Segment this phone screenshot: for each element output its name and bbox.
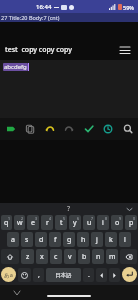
staticText: u	[87, 218, 92, 228]
button[interactable]: 2	[14, 215, 25, 230]
button[interactable]: s	[21, 232, 33, 247]
button[interactable]: f	[49, 232, 61, 247]
staticText: k	[109, 235, 113, 245]
button[interactable]: b	[78, 249, 90, 264]
button[interactable]: 6	[69, 215, 81, 230]
staticText: 27 Title:20 Body:7 (cnt)	[1, 14, 60, 21]
button[interactable]: ,	[33, 268, 44, 282]
staticText: p	[129, 218, 134, 228]
button[interactable]: Enter	[122, 267, 137, 282]
button[interactable]: d	[35, 232, 47, 247]
staticText: 16:44	[36, 3, 52, 11]
staticText: 6	[77, 216, 80, 221]
button[interactable]: Redo	[60, 120, 78, 138]
button[interactable]: Move right	[109, 268, 120, 282]
staticText: 1	[8, 216, 11, 221]
staticText: 2	[21, 216, 24, 221]
button[interactable]: a	[7, 232, 19, 247]
button[interactable]: 4	[41, 215, 53, 230]
staticText: r	[46, 218, 49, 228]
button[interactable]: Copy	[21, 120, 39, 138]
button[interactable]: Search	[119, 120, 137, 138]
button[interactable]: Done	[80, 120, 98, 138]
staticText: abcdefg	[4, 63, 27, 71]
button[interactable]: z	[21, 249, 34, 264]
staticText: d	[39, 235, 44, 245]
staticText: 4	[49, 216, 52, 221]
button[interactable]: g	[63, 232, 75, 247]
button[interactable]: Paste	[2, 120, 20, 138]
button[interactable]: v	[64, 249, 76, 264]
staticText: x	[40, 252, 44, 262]
button[interactable]: Menu	[117, 42, 133, 58]
button[interactable]: n	[92, 249, 104, 264]
staticText: h	[81, 235, 86, 245]
staticText: e	[31, 218, 35, 228]
button[interactable]: m	[106, 249, 118, 264]
button[interactable]: Move left	[96, 268, 107, 282]
button[interactable]: 9	[111, 215, 123, 230]
button[interactable]: 0	[125, 215, 137, 230]
staticText: y	[73, 218, 77, 228]
staticText: f	[54, 235, 57, 245]
staticText: ,	[38, 270, 40, 280]
button[interactable]: l	[119, 232, 131, 247]
button[interactable]: c	[50, 249, 62, 264]
staticText: g	[67, 235, 72, 245]
button[interactable]: Shift	[1, 249, 19, 264]
button[interactable]: Undo	[41, 120, 59, 138]
staticText: a	[11, 235, 15, 245]
button[interactable]: h	[77, 232, 89, 247]
staticText: z	[26, 252, 30, 262]
staticText: i	[102, 218, 104, 228]
button[interactable]: .	[83, 268, 94, 282]
staticText: w	[17, 218, 23, 228]
staticText: q	[4, 218, 9, 228]
button[interactable]: Emoji	[18, 268, 31, 282]
staticText: m	[109, 252, 116, 262]
staticText: 3	[35, 216, 38, 221]
button[interactable]: k	[105, 232, 117, 247]
staticText: s	[25, 235, 29, 245]
button[interactable]: Switch language	[1, 267, 16, 282]
staticText: 59%	[123, 4, 134, 11]
button[interactable]: 日本語	[46, 268, 81, 282]
button[interactable]: j	[91, 232, 103, 247]
staticText: 7	[91, 216, 94, 221]
button[interactable]: x	[36, 249, 48, 264]
staticText: 8	[105, 216, 108, 221]
staticText: 9	[119, 216, 122, 221]
staticText: c	[54, 252, 58, 262]
staticText: v	[68, 252, 72, 262]
staticText: あa	[4, 271, 13, 279]
button[interactable]: 8	[97, 215, 109, 230]
button[interactable]: 1	[1, 215, 12, 230]
staticText: ?	[67, 204, 71, 214]
staticText: 日本語	[55, 272, 72, 279]
staticText: j	[96, 235, 98, 245]
button[interactable]: Backspace	[120, 249, 137, 264]
staticText: 0	[133, 216, 136, 221]
button[interactable]: 3	[27, 215, 39, 230]
staticText: t	[60, 218, 63, 228]
button[interactable]: History	[99, 120, 117, 138]
staticText: o	[115, 218, 120, 228]
staticText: n	[96, 252, 101, 262]
staticText: test copy copy copy	[5, 45, 117, 55]
button[interactable]: 5	[55, 215, 67, 230]
staticText: l	[124, 235, 126, 245]
staticText: b	[82, 252, 87, 262]
button[interactable]: 7	[83, 215, 95, 230]
staticText: 5	[63, 216, 66, 221]
staticText: .	[88, 270, 90, 280]
